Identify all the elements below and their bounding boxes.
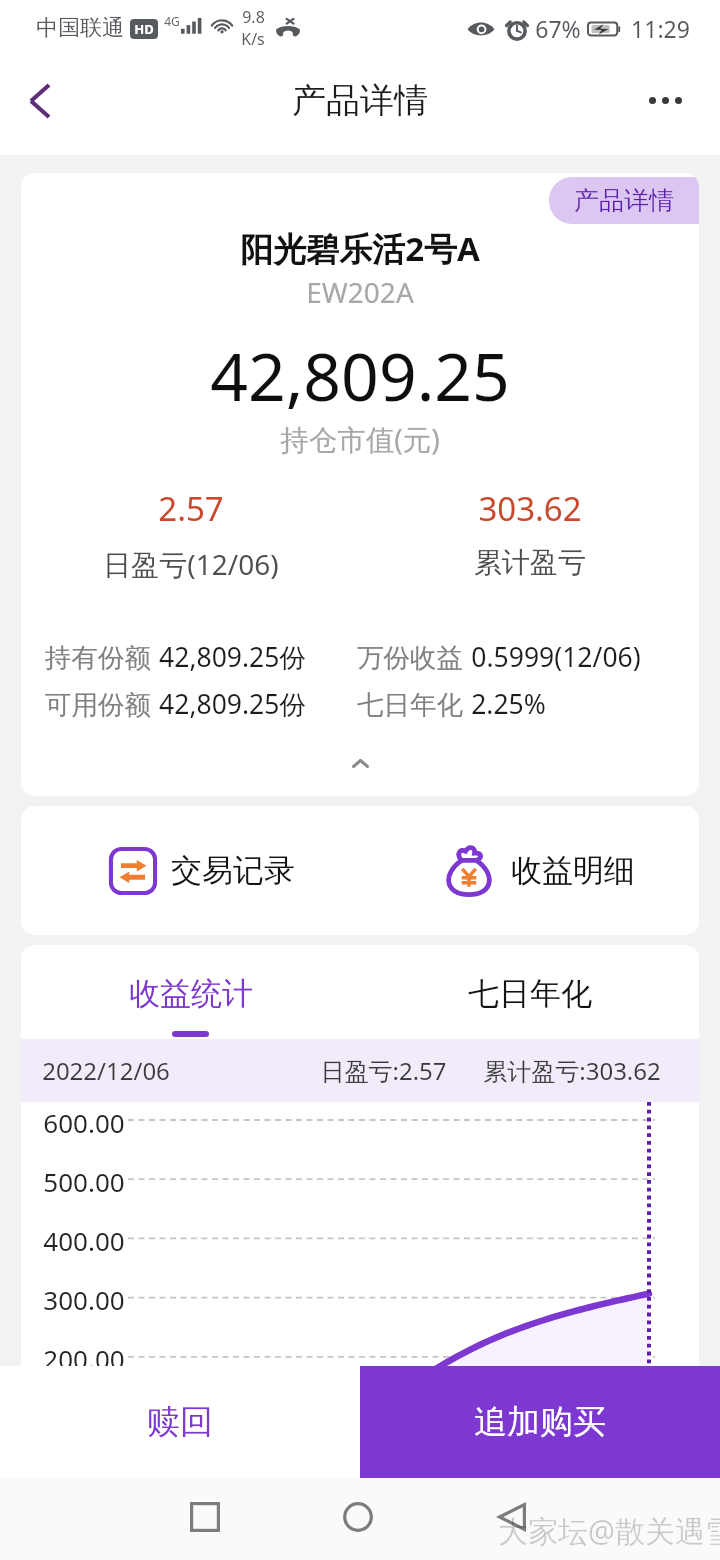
button[interactable]: 最近任务	[168, 1482, 242, 1556]
staticText: EW202A	[306, 273, 414, 311]
staticText: 中国联通	[36, 14, 124, 42]
staticText: 累计盈亏:303.62	[483, 1054, 661, 1087]
button[interactable]: 主屏幕	[321, 1482, 395, 1556]
staticText: 收益统计	[129, 974, 253, 1013]
staticText: 0.5999(12/06)	[471, 639, 641, 675]
staticText: 累计盈亏	[474, 545, 586, 580]
staticText: 2022/12/06	[42, 1054, 170, 1087]
staticText: 200.00	[43, 1341, 125, 1376]
staticText: 42,809.25	[210, 330, 510, 420]
button[interactable]: 更多选项	[630, 56, 720, 155]
button[interactable]: 七日年化	[360, 945, 699, 1039]
button[interactable]: 交易记录	[21, 806, 360, 935]
staticText: 交易记录	[171, 851, 295, 890]
staticText: 阳光碧乐活2号A	[240, 226, 480, 271]
staticText: 日盈亏:2.57	[320, 1054, 447, 1087]
button[interactable]: 赎回	[0, 1366, 360, 1478]
staticText: 42,809.25份	[159, 686, 306, 722]
staticText: 大家坛@散关遇雪	[498, 1510, 720, 1551]
button[interactable]: 返回	[475, 1482, 549, 1556]
staticText: 600.00	[43, 1105, 125, 1140]
button[interactable]: 收益明细	[360, 806, 699, 935]
button[interactable]: 产品详情	[549, 177, 699, 224]
staticText: 产品详情	[574, 185, 674, 216]
staticText: 追加购买	[474, 1401, 606, 1443]
staticText: HD	[134, 20, 154, 38]
staticText: 七日年化	[468, 974, 592, 1013]
staticText: 可用份额	[45, 688, 151, 721]
staticText: 67%	[535, 13, 581, 44]
staticText: 500.00	[43, 1164, 125, 1199]
staticText: 持有份额	[45, 641, 151, 674]
staticText: 赎回	[147, 1401, 213, 1443]
staticText: 七日年化	[357, 688, 463, 721]
staticText: 万份收益	[357, 641, 463, 674]
staticText: 日盈亏(12/06)	[103, 545, 279, 583]
staticText: 400.00	[43, 1223, 125, 1258]
staticText: 303.62	[478, 486, 582, 531]
staticText: 2.57	[158, 486, 224, 531]
staticText: 2.25%	[471, 686, 546, 722]
staticText: 4G	[164, 13, 180, 29]
staticText: 9.8	[242, 6, 265, 28]
button[interactable]: 返回	[0, 56, 80, 155]
staticText: K/s	[241, 28, 265, 50]
staticText: 收益明细	[511, 851, 635, 890]
staticText: 42,809.25份	[159, 639, 306, 675]
staticText: 持仓市值(元)	[280, 420, 440, 459]
staticText: 11:29	[631, 13, 690, 44]
button[interactable]: 收益统计	[21, 945, 360, 1039]
staticText: 300.00	[43, 1282, 125, 1317]
button[interactable]: 追加购买	[360, 1366, 720, 1478]
staticText: 产品详情	[292, 79, 428, 122]
button[interactable]: 收起	[21, 748, 699, 778]
